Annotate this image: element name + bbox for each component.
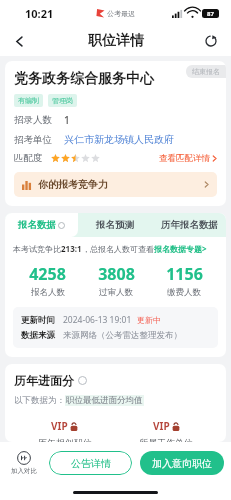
staticText: 87 — [207, 10, 214, 18]
button[interactable]: 报名数据 — [5, 213, 78, 237]
staticText: 职位详情 — [88, 32, 144, 50]
button[interactable]: 返回 — [5, 27, 33, 55]
staticText: 更新时间 — [21, 315, 55, 326]
staticText: 数据来源 — [21, 330, 55, 341]
staticText: 报名数据 — [18, 219, 56, 231]
staticText: 历年相似职位 — [38, 437, 92, 442]
staticText: 公考最迟 — [107, 9, 135, 18]
staticText: 公告详情 — [71, 457, 111, 470]
staticText: 你的报考竞争力 — [38, 178, 108, 191]
staticText: 缴费人数 — [167, 287, 201, 298]
button[interactable]: VIP — [14, 419, 115, 442]
staticText: 更新中 — [137, 315, 161, 325]
staticText: VIP — [51, 419, 68, 433]
staticText: 匹配度 — [14, 152, 43, 164]
staticText: 报名人数 — [31, 287, 65, 298]
staticText: 有编制 — [18, 96, 39, 105]
staticText: 报名预测 — [96, 219, 134, 231]
staticText: 党务政务综合服务中心 — [14, 70, 154, 88]
button[interactable]: 报名预测 — [78, 213, 152, 237]
button[interactable]: 查看匹配详情 — [159, 153, 217, 164]
staticText: 4258 — [29, 263, 66, 285]
staticText: 加入对比 — [11, 467, 37, 475]
staticText: 查看匹配详情 — [159, 153, 210, 164]
staticText: 本考试竞争比 — [13, 244, 61, 254]
button[interactable]: 报名数据专题> — [154, 243, 207, 254]
staticText: 3808 — [98, 263, 135, 285]
staticText: 213:1 — [61, 243, 82, 254]
button[interactable]: 加入意向职位 — [140, 451, 224, 475]
staticText: 1156 — [166, 263, 203, 285]
staticText: VIP — [153, 419, 170, 433]
staticText: 管理岗 — [52, 96, 73, 105]
staticText: 招录人数 — [14, 114, 52, 126]
staticText: 历年进面分 — [14, 373, 74, 388]
staticText: 2024-06-13 19:01 — [63, 314, 132, 326]
staticText: 1 — [64, 113, 70, 127]
button[interactable]: 历年报名数据 — [152, 213, 226, 237]
staticText: 来源网络（公考雷达整理发布） — [63, 330, 182, 341]
staticText: 结束报名 — [192, 67, 220, 76]
staticText: 过审人数 — [99, 287, 133, 298]
staticText: 10:21 — [25, 6, 54, 21]
button[interactable]: VIP — [115, 419, 217, 442]
button[interactable]: 刷新 — [198, 28, 224, 54]
button[interactable]: 兴仁市新龙场镇人民政府 — [64, 133, 174, 146]
button[interactable]: 加入对比 — [7, 451, 41, 475]
staticText: 以下数据为： — [14, 395, 65, 406]
staticText: 历年报名数据 — [161, 219, 218, 231]
button[interactable]: 公告详情 — [49, 451, 132, 475]
staticText: 招考单位 — [14, 134, 52, 146]
staticText: 职位最低进面分均值 — [66, 395, 143, 406]
staticText: 所属工作单位 — [139, 437, 193, 442]
button[interactable]: 你的报考竞争力 — [14, 172, 217, 197]
staticText: ，总报名人数可查看 — [82, 244, 154, 254]
staticText: 加入意向职位 — [152, 457, 212, 470]
